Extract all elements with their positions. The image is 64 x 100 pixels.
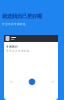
button[interactable]: 选择	[29, 79, 35, 85]
staticText: 开启你的专属权益	[2, 23, 26, 26]
staticText: 就选我自己更好喔	[2, 13, 42, 20]
staticText: 专属顾问	[6, 45, 18, 48]
staticText: 尊享会员专属权益	[6, 49, 30, 53]
